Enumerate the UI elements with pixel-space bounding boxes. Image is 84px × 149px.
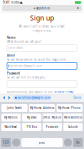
staticText: Postcode <box>46 125 59 129</box>
staticText: What should we call you? <box>7 40 41 43</box>
button[interactable]: space <box>21 138 63 147</box>
staticText: So we can tell it's really you. <box>7 76 46 79</box>
button[interactable]: John Smith <box>1 104 28 112</box>
staticText: PO Box <box>27 125 37 129</box>
staticText: Name <box>7 36 16 39</box>
button[interactable]: Go <box>73 138 83 147</box>
button[interactable]: Reload <box>76 6 80 10</box>
staticText: By continuing, you agree to our <box>7 90 54 93</box>
staticText: Office Mobile <box>43 116 62 119</box>
button[interactable]: Work Address <box>63 113 83 121</box>
staticText: Privacy promise. <box>31 29 52 32</box>
staticText: Work Address <box>64 116 82 119</box>
button[interactable]: Done <box>72 96 82 99</box>
button[interactable]: Terms & Privacy <box>54 90 73 93</box>
button[interactable]: Office Mobile <box>43 113 62 121</box>
staticText: My Mobile <box>4 116 18 119</box>
button[interactable]: Forward <box>7 94 12 102</box>
staticText: Telstra <box>10 1 19 4</box>
button[interactable] <box>7 80 77 87</box>
staticText: space <box>38 141 45 144</box>
staticText: We won't sell or share your email. <box>18 25 65 28</box>
button[interactable]: My Home Phone <box>56 104 83 112</box>
staticText: My Home Phone <box>58 106 81 110</box>
button[interactable]: Emoji <box>12 138 20 146</box>
staticText: John Smith <box>7 106 22 110</box>
staticText: wordbrain@example.com <box>18 96 50 99</box>
staticText: wordbrain@example.com <box>9 64 41 68</box>
staticText: Email <box>7 54 15 57</box>
button[interactable]: My Mobile <box>1 113 21 121</box>
button[interactable]: Postcode <box>43 123 62 131</box>
button[interactable]: wordbrain@example.com <box>13 95 51 100</box>
button[interactable]: Suburb <box>63 123 83 131</box>
button[interactable]: Back <box>1 94 7 102</box>
staticText: appdot.co <box>36 6 50 10</box>
button[interactable]: PO Box <box>22 123 41 131</box>
staticText: Sign up <box>30 14 54 22</box>
staticText: 123 <box>3 141 9 144</box>
staticText: John Smith <box>9 46 24 50</box>
button[interactable]: Dictation <box>64 138 72 146</box>
staticText: 9:41 <box>3 1 10 4</box>
staticText: My Home Address <box>30 106 54 110</box>
button[interactable]: 123 <box>1 138 11 147</box>
staticText: Suburb <box>68 125 78 129</box>
staticText: Done <box>73 96 81 99</box>
staticText: My Email <box>27 116 37 119</box>
button[interactable]: My Email <box>22 113 41 121</box>
staticText: Password <box>7 72 20 75</box>
staticText: Terms & Privacy <box>54 90 73 93</box>
button[interactable]: Work Email <box>1 123 21 131</box>
button[interactable]: wordbrain@example.com <box>7 62 77 69</box>
button[interactable]: My Home Address <box>29 104 55 112</box>
staticText: Work Email <box>4 125 17 129</box>
staticText: Go <box>76 141 80 144</box>
button[interactable]: John Smith <box>7 44 77 51</box>
staticText: So we know where to send the magic link. <box>7 58 66 61</box>
